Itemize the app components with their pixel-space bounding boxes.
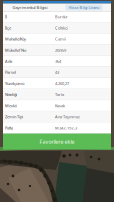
staticText: Parsel bbox=[5, 70, 16, 75]
staticText: Pafta bbox=[5, 125, 13, 131]
staticText: Camii bbox=[55, 36, 66, 42]
staticText: Gayrimenkul Bilgisi bbox=[12, 5, 47, 10]
staticText: Hisse Bilgi Listesi bbox=[68, 5, 99, 10]
staticText: Yüzölçümü bbox=[5, 81, 24, 86]
staticText: 364 bbox=[55, 58, 61, 64]
staticText: Favorilere ekle bbox=[39, 138, 74, 145]
button[interactable]: Hisse Bilgi Listesi bbox=[57, 3, 111, 11]
staticText: Mevkii bbox=[5, 103, 17, 108]
staticText: Burdur bbox=[55, 14, 68, 19]
staticText: Mahalle/Köy bbox=[5, 36, 26, 42]
button[interactable]: Gayrimenkul Bilgisi bbox=[3, 3, 57, 11]
staticText: 4.260,27 bbox=[55, 81, 69, 86]
staticText: Niteliği bbox=[5, 92, 17, 97]
staticText: Zemin Tipi bbox=[5, 114, 23, 119]
staticText: Kavak bbox=[55, 103, 65, 108]
staticText: İl bbox=[5, 14, 7, 19]
staticText: Tarla bbox=[55, 92, 64, 97]
staticText: Ada bbox=[5, 58, 12, 64]
staticText: Çeltikçi bbox=[55, 25, 68, 30]
staticText: Mükellef No bbox=[5, 47, 26, 53]
staticText: Ana Taşınmaz bbox=[55, 114, 80, 119]
staticText: 20/359 bbox=[55, 47, 66, 53]
staticText: M34-c-19-c-3 bbox=[55, 125, 77, 131]
staticText: 43 bbox=[55, 70, 59, 75]
staticText: İlçe bbox=[5, 25, 11, 30]
button[interactable]: Favorilere ekle bbox=[3, 134, 111, 150]
